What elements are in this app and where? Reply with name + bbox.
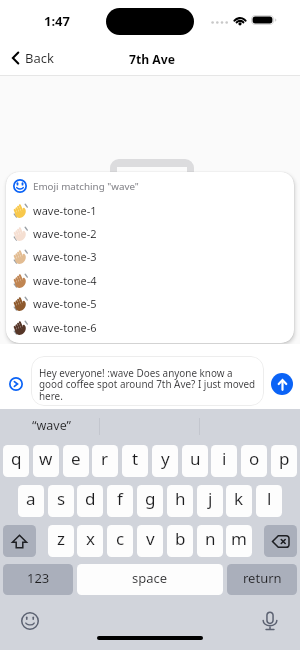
staticText: 1:47 — [44, 12, 70, 30]
staticText: l — [267, 487, 272, 510]
staticText: e — [71, 447, 81, 470]
button[interactable]: Emoji keyboard — [21, 612, 39, 630]
button[interactable]: Backspace — [264, 525, 297, 557]
button[interactable]: return — [227, 564, 297, 595]
button[interactable]: More actions — [9, 377, 23, 391]
staticText: g — [145, 487, 156, 510]
staticText: wave-tone-1 — [33, 203, 97, 218]
button[interactable]: o — [241, 445, 267, 477]
staticText: q — [11, 447, 22, 470]
button[interactable]: x — [77, 525, 103, 557]
staticText: k — [234, 487, 244, 510]
staticText: “wave” — [32, 417, 72, 434]
staticText: Back — [25, 49, 54, 67]
button[interactable]: a — [18, 485, 44, 517]
staticText: r — [101, 447, 109, 470]
staticText: i — [222, 447, 227, 470]
staticText: h — [175, 487, 186, 510]
button[interactable]: e — [63, 445, 89, 477]
button[interactable]: y — [152, 445, 178, 477]
button[interactable]: i — [211, 445, 237, 477]
button[interactable]: wave-tone-6 — [6, 316, 294, 339]
staticText: Hey everyone! :wave Does anyone know a g… — [39, 366, 256, 403]
staticText: return — [243, 569, 282, 587]
staticText: b — [175, 527, 186, 550]
button[interactable]: h — [167, 485, 193, 517]
staticText: 7th Ave — [129, 51, 176, 68]
staticText: j — [208, 487, 213, 510]
staticText: Emoji matching "wave" — [33, 180, 139, 193]
button[interactable]: q — [3, 445, 29, 477]
button[interactable]: wave-tone-3 — [6, 245, 294, 268]
button[interactable]: Send — [271, 373, 293, 395]
button[interactable]: u — [182, 445, 208, 477]
staticText: o — [249, 447, 260, 470]
staticText: x — [86, 527, 95, 550]
button[interactable]: l — [256, 485, 282, 517]
button[interactable]: j — [197, 485, 223, 517]
button[interactable]: space — [77, 564, 223, 595]
staticText: wave-tone-2 — [33, 226, 97, 241]
button[interactable]: w — [33, 445, 59, 477]
staticText: space — [132, 569, 168, 587]
button[interactable]: wave-tone-2 — [6, 222, 294, 245]
button[interactable]: wave-tone-4 — [6, 269, 294, 292]
button[interactable]: m — [226, 525, 252, 557]
staticText: wave-tone-3 — [33, 249, 97, 264]
staticText: wave-tone-5 — [33, 296, 97, 311]
button[interactable]: b — [167, 525, 193, 557]
button[interactable]: wave-tone-5 — [6, 292, 294, 315]
staticText: n — [205, 527, 216, 550]
staticText: m — [231, 527, 247, 550]
button[interactable]: Back — [4, 45, 64, 73]
button[interactable]: z — [48, 525, 74, 557]
button[interactable]: c — [107, 525, 133, 557]
staticText: u — [190, 447, 201, 470]
staticText: c — [116, 527, 125, 550]
staticText: wave-tone-6 — [33, 320, 97, 335]
button[interactable]: r — [92, 445, 118, 477]
button[interactable]: t — [122, 445, 148, 477]
staticText: wave-tone-4 — [33, 273, 97, 288]
staticText: t — [132, 447, 139, 470]
staticText: p — [279, 447, 290, 470]
button[interactable]: Dictation — [261, 611, 279, 631]
button[interactable]: n — [197, 525, 223, 557]
staticText: y — [161, 447, 170, 470]
button[interactable]: f — [107, 485, 133, 517]
button[interactable]: p — [271, 445, 297, 477]
staticText: z — [57, 527, 65, 550]
button[interactable]: Hey everyone! :wave Does anyone know a g… — [31, 356, 264, 406]
staticText: 123 — [27, 569, 50, 587]
button[interactable]: 123 — [3, 564, 73, 595]
button[interactable]: v — [137, 525, 163, 557]
button[interactable]: Shift — [3, 525, 36, 557]
staticText: w — [39, 447, 53, 470]
staticText: a — [26, 487, 36, 510]
staticText: v — [146, 527, 155, 550]
staticText: d — [85, 487, 96, 510]
staticText: s — [57, 487, 66, 510]
staticText: f — [117, 487, 123, 510]
button[interactable]: k — [226, 485, 252, 517]
button[interactable]: wave-tone-1 — [6, 199, 294, 222]
button[interactable]: d — [77, 485, 103, 517]
button[interactable]: g — [137, 485, 163, 517]
button[interactable]: s — [48, 485, 74, 517]
